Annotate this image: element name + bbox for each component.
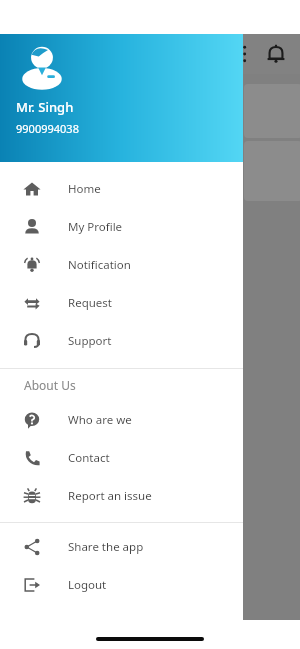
- button[interactable]: Notification: [0, 246, 243, 284]
- staticText: Logout: [68, 577, 107, 593]
- button[interactable]: Request: [0, 284, 243, 322]
- staticText: Home: [68, 181, 101, 197]
- button[interactable]: Report an issue: [0, 477, 243, 515]
- button[interactable]: Notifications: [262, 40, 290, 68]
- button[interactable]: Home: [0, 170, 243, 208]
- staticText: Mr. Singh: [16, 98, 74, 116]
- staticText: Report an issue: [68, 488, 152, 504]
- staticText: Contact: [68, 450, 110, 466]
- button[interactable]: Logout: [0, 566, 243, 604]
- staticText: Who are we: [68, 412, 132, 428]
- button[interactable]: Contact: [0, 439, 243, 477]
- button[interactable]: Who are we: [0, 401, 243, 439]
- staticText: Notification: [68, 257, 131, 273]
- button[interactable]: Support: [0, 322, 243, 360]
- staticText: Support: [68, 333, 112, 349]
- button[interactable]: Share the app: [0, 528, 243, 566]
- button[interactable]: My Profile: [0, 208, 243, 246]
- staticText: Request: [68, 295, 112, 311]
- button[interactable]: Notifications: [262, 40, 290, 68]
- staticText: About Us: [24, 377, 76, 393]
- button[interactable]: Mr. Singh: [0, 34, 243, 162]
- staticText: 9900994038: [16, 121, 79, 136]
- staticText: Share the app: [68, 539, 144, 555]
- staticText: My Profile: [68, 219, 123, 235]
